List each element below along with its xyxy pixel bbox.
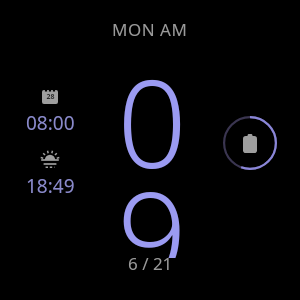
button[interactable]: Battery level xyxy=(222,115,278,171)
staticText: 6 / 21 xyxy=(128,252,173,275)
button[interactable]: Sunset at 18:49 xyxy=(14,148,86,199)
staticText: 09 xyxy=(92,38,212,258)
staticText: 08:00 xyxy=(26,110,75,136)
button[interactable]: 09 xyxy=(92,38,212,258)
staticText: 18:49 xyxy=(26,173,75,199)
staticText: MON AM xyxy=(112,18,188,41)
staticText: 28 xyxy=(46,92,55,102)
button[interactable]: 6 / 21 xyxy=(128,252,173,275)
button[interactable]: MON AM xyxy=(112,18,188,41)
button[interactable]: Calendar event at 08:00 xyxy=(14,88,86,136)
